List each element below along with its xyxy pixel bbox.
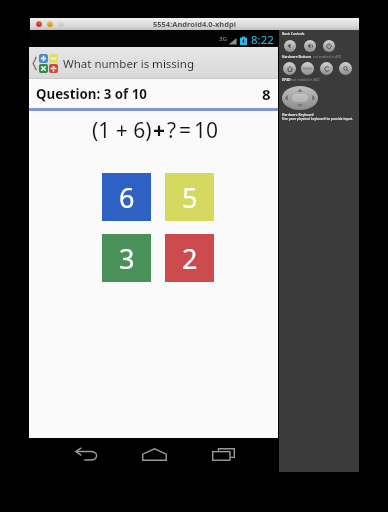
- button[interactable]: 6: [102, 173, 151, 221]
- staticText: 10: [194, 116, 219, 145]
- staticText: 3: [119, 240, 135, 277]
- button[interactable]: 2: [165, 234, 214, 282]
- button[interactable]: Volume down: [284, 40, 296, 52]
- staticText: not enabled in AVD: [291, 78, 320, 82]
- staticText: +: [153, 116, 166, 145]
- staticText: MENU: [303, 67, 312, 71]
- staticText: Hardware Buttons: [282, 55, 312, 59]
- button[interactable]: 3: [102, 234, 151, 282]
- staticText: 8: [262, 84, 271, 104]
- staticText: DPAD: [282, 78, 291, 82]
- staticText: 2: [182, 240, 198, 277]
- staticText: 6: [119, 179, 135, 216]
- staticText: Basic Controls: [282, 32, 305, 36]
- staticText: Use your physical keyboard to provide in…: [282, 117, 353, 121]
- staticText: 8:22: [251, 32, 274, 48]
- staticText: What number is missing: [63, 56, 195, 72]
- staticText: (1 + 6): [92, 116, 152, 145]
- staticText: Hardware Keyboard: [282, 113, 314, 117]
- button[interactable]: Volume up: [304, 40, 316, 52]
- button[interactable]: What number is missing: [29, 47, 278, 79]
- button[interactable]: Recent apps: [195, 438, 251, 480]
- staticText: 3G: [219, 35, 227, 43]
- staticText: 5554:Android4.0-xhdpi: [153, 19, 236, 29]
- button[interactable]: 5: [165, 173, 214, 221]
- button[interactable]: Back: [57, 438, 113, 480]
- button[interactable]: Search: [339, 62, 352, 75]
- button[interactable]: Menu: [301, 62, 314, 75]
- button[interactable]: Home: [126, 438, 182, 480]
- button[interactable]: Back: [320, 62, 333, 75]
- staticText: not enabled in AVD: [312, 55, 342, 59]
- button[interactable]: DPAD: [282, 86, 318, 110]
- button[interactable]: Home: [283, 62, 296, 75]
- staticText: Question: 3 of 10: [36, 85, 147, 103]
- staticText: ?: [167, 116, 177, 145]
- staticText: 5: [182, 179, 198, 216]
- staticText: =: [179, 116, 192, 145]
- button[interactable]: Power: [323, 40, 335, 52]
